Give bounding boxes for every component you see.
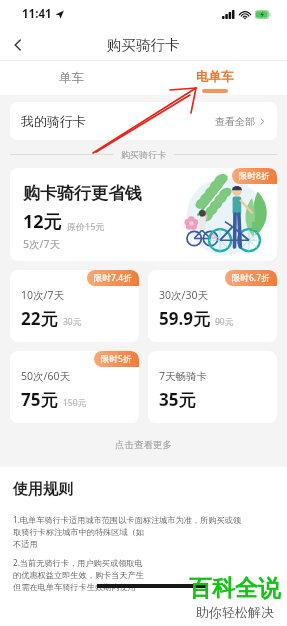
staticText: 90元 [215,316,234,328]
staticText: 电单车 [196,69,234,85]
staticText: 30元 [63,316,82,328]
staticText: 5次/7天 [23,237,60,251]
staticText: 1.电单车骑行卡适用城市范围以卡面标注城市为准，所购买或领 取骑行卡标注城市中的… [13,514,241,549]
staticText: 150元 [63,397,87,409]
staticText: 查看全部 [215,115,255,128]
staticText: 购买骑行卡 [121,149,166,160]
button[interactable]: 电单车 [143,61,287,95]
staticText: 我的骑行卡 [21,113,86,129]
button[interactable]: Back [0,28,36,61]
button[interactable]: 30次/30天 [148,270,277,342]
staticText: 购卡骑行更省钱 [23,183,142,204]
staticText: 50次/60天 [21,369,70,383]
staticText: 12元 [23,209,62,234]
staticText: 单车 [59,70,84,86]
button[interactable]: 50次/60天 [10,351,139,423]
button[interactable]: 7天畅骑卡 [148,351,277,423]
staticText: 限时8折 [239,170,270,182]
staticText: 2.当前无骑行卡，用户购买或领取电 的优惠权益立即生效，购卡当天产生 但需在电单… [13,557,144,592]
staticText: 35元 [159,388,196,411]
button[interactable]: 10次/7天 [10,270,139,342]
staticText: 22元 [21,307,58,330]
staticText: 限时6.7折 [232,272,270,284]
staticText: 59.9元 [159,307,210,330]
staticText: 点击查看更多 [115,439,172,451]
button[interactable]: 我的骑行卡 [10,102,277,140]
staticText: 11:41 [22,6,52,22]
staticText: 百科全说 [189,574,281,603]
staticText: 限时7.4折 [94,272,132,284]
staticText: 原价15元 [67,220,105,232]
staticText: 7天畅骑卡 [159,369,208,383]
staticText: 使用规则 [13,480,73,499]
staticText: 限时5折 [101,353,132,365]
button[interactable]: 购卡骑行更省钱 [10,168,277,261]
staticText: 30次/30天 [159,288,208,302]
button[interactable]: 点击查看更多 [0,435,287,455]
staticText: 助你轻松解决 [196,604,274,620]
staticText: 10次/7天 [21,288,64,302]
button[interactable]: 单车 [0,61,143,95]
staticText: 75元 [21,388,58,411]
staticText: 购买骑行卡 [107,36,180,54]
